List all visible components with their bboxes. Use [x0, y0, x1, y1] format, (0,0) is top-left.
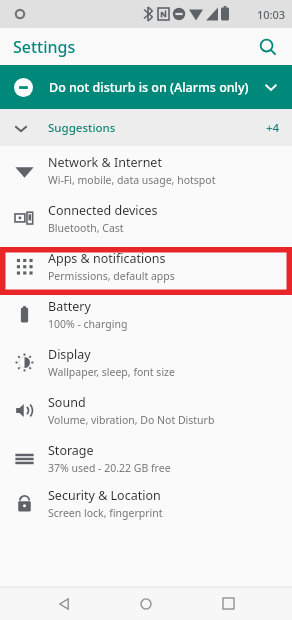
staticText: Volume, vibration, Do Not Disturb [48, 413, 215, 427]
button[interactable]: Network & Internet [0, 146, 292, 194]
staticText: 37% used - 20.22 GB free [48, 461, 171, 475]
staticText: Suggestions [48, 120, 116, 136]
button[interactable]: Back [46, 587, 82, 620]
staticText: Bluetooth, Cast [48, 221, 124, 235]
button[interactable]: Do not disturb is on (Alarms only) [0, 65, 292, 109]
button[interactable]: Home [128, 587, 164, 620]
staticText: Do not disturb is on (Alarms only) [49, 79, 249, 96]
staticText: Battery [48, 298, 91, 315]
button[interactable]: Search [252, 31, 284, 63]
button[interactable]: Sound [0, 386, 292, 434]
button[interactable]: Storage [0, 434, 292, 482]
button[interactable]: Security & Location [0, 482, 292, 524]
staticText: Screen lock, fingerprint [48, 506, 163, 520]
button[interactable]: Battery [0, 290, 292, 338]
staticText: Connected devices [48, 202, 158, 219]
staticText: Network & Internet [48, 154, 162, 171]
staticText: 10:03 [257, 7, 286, 22]
staticText: Display [48, 346, 91, 363]
staticText: Settings [13, 36, 76, 58]
staticText: Wi-Fi, mobile, data usage, hotspot [48, 173, 216, 187]
staticText: Sound [48, 394, 86, 411]
button[interactable]: Display [0, 338, 292, 386]
staticText: Permissions, default apps [48, 269, 175, 283]
button[interactable]: Suggestions [0, 109, 292, 146]
staticText: Security & Location [48, 487, 161, 504]
button[interactable]: Connected devices [0, 194, 292, 242]
button[interactable]: Recent apps [210, 587, 246, 620]
staticText: 100% - charging [48, 317, 128, 331]
button[interactable]: Apps & notifications [0, 242, 292, 290]
staticText: Wallpaper, sleep, font size [48, 365, 175, 379]
staticText: Apps & notifications [48, 250, 166, 267]
staticText: Storage [48, 442, 94, 459]
staticText: +4 [266, 120, 280, 136]
